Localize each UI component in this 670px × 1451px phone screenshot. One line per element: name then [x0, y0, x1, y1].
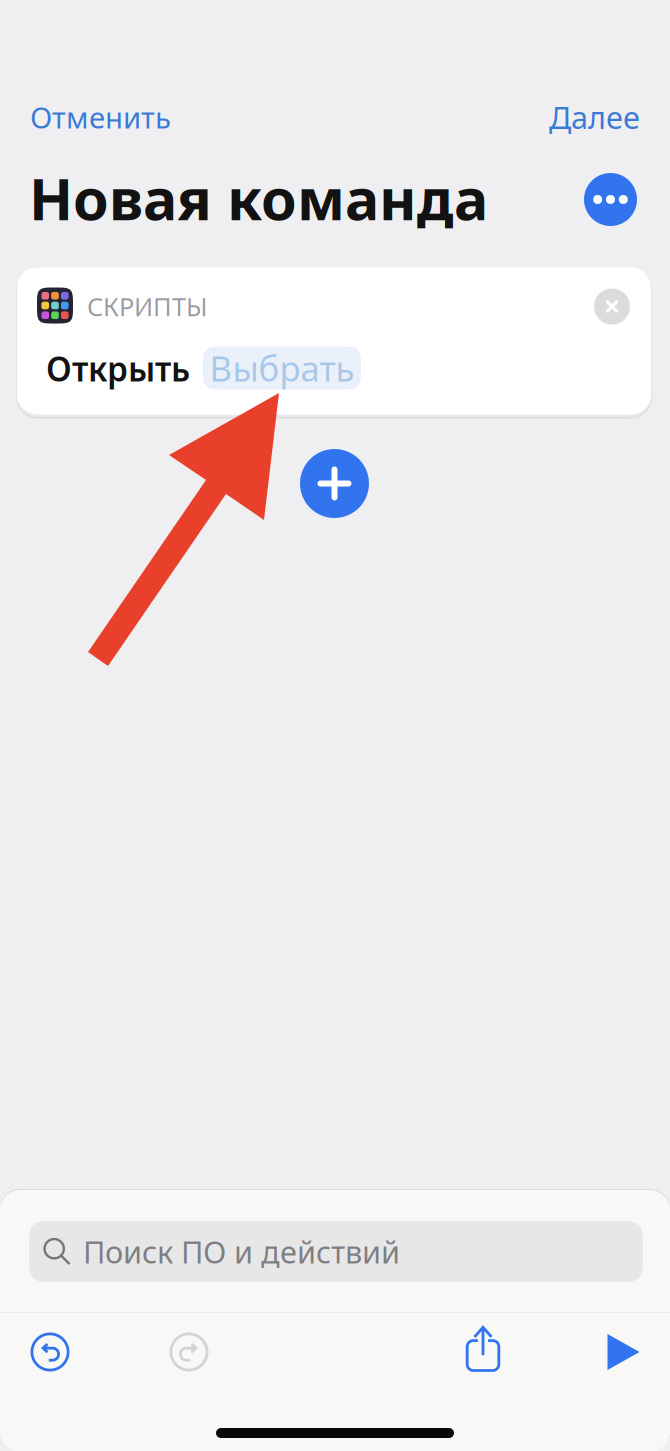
- staticText: СКРИПТЫ: [87, 289, 208, 323]
- button[interactable]: Отменить: [30, 95, 190, 139]
- button[interactable]: Share: [440, 1315, 526, 1381]
- button[interactable]: Выбрать: [203, 346, 361, 389]
- button[interactable]: Далее: [530, 95, 640, 139]
- button[interactable]: More options: [584, 173, 637, 226]
- staticText: Отменить: [30, 97, 171, 136]
- staticText: Новая команда: [29, 160, 488, 236]
- button[interactable]: Redo: [146, 1319, 232, 1385]
- button[interactable]: Add action: [300, 449, 369, 518]
- button[interactable]: Remove action: [594, 288, 630, 324]
- button[interactable]: Run: [580, 1319, 666, 1385]
- staticText: Выбрать: [209, 345, 354, 391]
- staticText: Открыть: [46, 346, 190, 391]
- staticText: Далее: [549, 97, 640, 137]
- button[interactable]: Undo: [7, 1319, 93, 1385]
- staticText: Поиск ПО и действий: [83, 1231, 400, 1272]
